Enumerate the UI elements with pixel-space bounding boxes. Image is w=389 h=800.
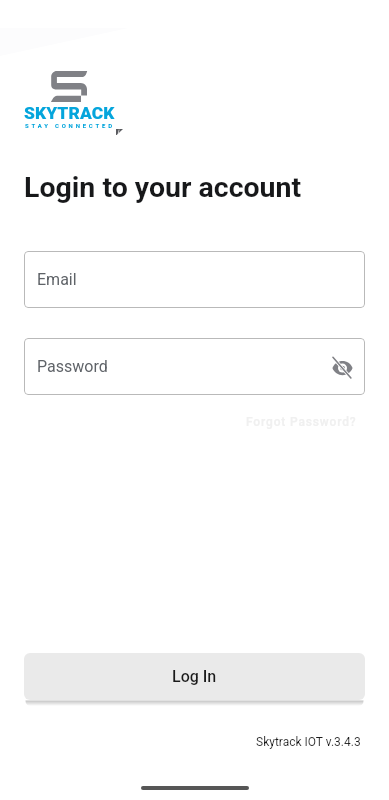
staticText: Email [37,270,77,289]
staticText: SKYTRACK [24,103,115,123]
staticText: Log In [172,667,217,686]
staticText: STAY CONNECTED [25,122,115,129]
staticText: Forgot Password? [246,415,357,429]
staticText: Skytrack IOT v.3.4.3 [256,735,361,749]
button[interactable]: Password [24,338,365,395]
button[interactable]: Forgot Password? [244,413,359,431]
button[interactable]: Show password [326,351,358,383]
staticText: Login to your account [24,171,302,204]
button[interactable]: Email [24,251,365,308]
button[interactable]: Log In [24,653,365,700]
staticText: Password [37,357,108,376]
